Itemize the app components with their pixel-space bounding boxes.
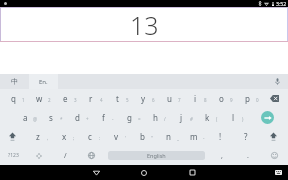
staticText: s [49, 112, 53, 123]
button[interactable]: Change language [78, 146, 104, 165]
staticText: ; [73, 135, 75, 141]
staticText: o [219, 93, 224, 104]
staticText: w [36, 93, 43, 104]
button[interactable]: i [182, 89, 208, 108]
staticText: 6 [152, 97, 155, 103]
staticText: 4 [100, 97, 103, 103]
button[interactable]: Shift [0, 127, 25, 146]
staticText: 中 [11, 77, 18, 86]
button[interactable]: p [234, 89, 260, 108]
staticText: ( [216, 116, 218, 122]
button[interactable]: d [64, 108, 90, 127]
button[interactable]: ? [233, 127, 259, 146]
staticText: _ [177, 135, 179, 141]
staticText: / [64, 151, 67, 161]
staticText: 7 [178, 97, 181, 103]
staticText: p [245, 93, 250, 104]
button[interactable]: q [0, 89, 26, 108]
staticText: 5 [126, 97, 129, 103]
staticText: k [205, 112, 210, 123]
button[interactable]: Settings [26, 146, 52, 165]
staticText: # [190, 116, 193, 122]
staticText: + [86, 116, 89, 122]
staticText: h [153, 112, 158, 123]
staticText: : [99, 135, 101, 141]
button[interactable]: 中 [0, 74, 29, 89]
staticText: 0 [256, 97, 259, 103]
staticText: 8 [204, 97, 207, 103]
button[interactable]: g [116, 108, 142, 127]
button[interactable]: Shift [259, 127, 288, 146]
staticText: 1 [22, 97, 25, 103]
staticText: y [141, 93, 146, 104]
button[interactable]: h [142, 108, 168, 127]
staticText: u [167, 93, 172, 104]
staticText: , [221, 151, 223, 161]
button[interactable]: En. [29, 74, 58, 89]
staticText: En. [39, 78, 48, 86]
button[interactable]: Back [72, 165, 120, 180]
button[interactable]: y [130, 89, 156, 108]
button[interactable]: Voice input [266, 74, 288, 89]
button[interactable]: Hide keyboard [268, 165, 288, 180]
staticText: f [102, 112, 105, 123]
button[interactable]: / [52, 146, 78, 165]
staticText: r [89, 93, 93, 104]
button[interactable]: Emoji [261, 146, 288, 165]
staticText: x [62, 131, 67, 142]
button[interactable]: w [26, 89, 52, 108]
button[interactable]: English [108, 151, 205, 160]
staticText: j [180, 112, 183, 123]
staticText: c [88, 131, 92, 142]
staticText: 3:52 [276, 0, 287, 7]
staticText: n [166, 131, 171, 142]
button[interactable]: z [25, 127, 51, 146]
staticText: 13 [130, 8, 159, 42]
button[interactable]: b [129, 127, 155, 146]
button[interactable]: a [12, 108, 38, 127]
button[interactable]: k [194, 108, 220, 127]
button[interactable]: Backspace [260, 89, 288, 108]
button[interactable]: , [209, 146, 235, 165]
staticText: m [190, 131, 198, 142]
button[interactable]: f [90, 108, 116, 127]
staticText: , [47, 135, 49, 141]
button[interactable]: j [168, 108, 194, 127]
staticText: @ [33, 116, 38, 122]
staticText: t [116, 93, 119, 104]
button[interactable]: e [52, 89, 78, 108]
staticText: ) [242, 116, 244, 122]
button[interactable]: o [208, 89, 234, 108]
button[interactable]: v [103, 127, 129, 146]
staticText: - [112, 116, 114, 122]
staticText: q [11, 93, 16, 104]
staticText: v [114, 131, 119, 142]
button[interactable]: t [104, 89, 130, 108]
button[interactable]: s [38, 108, 64, 127]
staticText: - [203, 135, 205, 141]
staticText: l [232, 112, 235, 123]
button[interactable]: r [78, 89, 104, 108]
button[interactable]: x [51, 127, 77, 146]
button[interactable]: ?123 [0, 146, 26, 165]
button[interactable]: u [156, 89, 182, 108]
button[interactable]: m [181, 127, 207, 146]
staticText: " [151, 135, 153, 141]
button[interactable]: n [155, 127, 181, 146]
button[interactable]: ! [207, 127, 233, 146]
button[interactable]: l [220, 108, 246, 127]
staticText: = [138, 116, 141, 122]
button[interactable]: Recents [168, 165, 216, 180]
staticText: 3 [74, 97, 77, 103]
button[interactable]: c [77, 127, 103, 146]
staticText: * [60, 116, 63, 122]
button[interactable]: Enter [246, 108, 288, 127]
staticText: a [23, 112, 28, 123]
staticText: / [164, 116, 166, 122]
staticText: . [247, 151, 249, 161]
button[interactable]: Home [120, 165, 168, 180]
staticText: z [36, 131, 40, 142]
staticText: g [127, 112, 132, 123]
staticText: i [194, 93, 197, 104]
